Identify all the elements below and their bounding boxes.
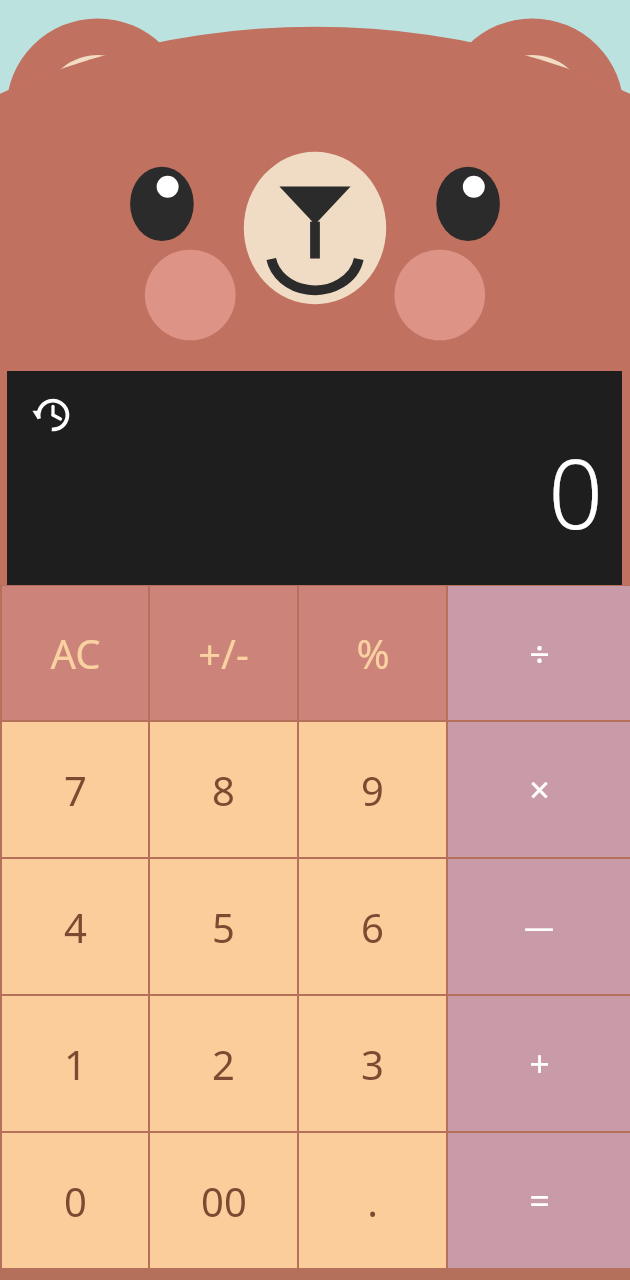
staticText: 9 — [361, 763, 384, 817]
button[interactable]: — — [448, 859, 630, 994]
staticText: 7 — [64, 763, 87, 817]
staticText: 6 — [361, 900, 384, 954]
button[interactable]: × — [448, 722, 630, 857]
staticText: 0 — [548, 426, 603, 557]
staticText: AC — [50, 626, 101, 680]
staticText: — — [524, 906, 554, 947]
button[interactable]: % — [299, 586, 446, 720]
button[interactable]: ÷ — [448, 586, 630, 720]
button[interactable]: + — [448, 996, 630, 1131]
staticText: 00 — [201, 1174, 247, 1228]
button[interactable]: 7 — [2, 722, 148, 857]
staticText: % — [356, 626, 390, 680]
staticText: . — [367, 1174, 378, 1228]
button[interactable]: 5 — [150, 859, 297, 994]
staticText: 0 — [64, 1174, 87, 1228]
staticText: 4 — [64, 900, 87, 954]
staticText: 3 — [361, 1037, 384, 1091]
staticText: + — [529, 1039, 550, 1088]
button[interactable]: 2 — [150, 996, 297, 1131]
staticText: ÷ — [529, 629, 550, 678]
button[interactable]: +/- — [150, 586, 297, 720]
button[interactable]: 6 — [299, 859, 446, 994]
staticText: = — [529, 1176, 550, 1225]
button[interactable]: History — [31, 393, 75, 437]
staticText: 5 — [212, 900, 235, 954]
staticText: 1 — [64, 1037, 87, 1091]
staticText: × — [529, 765, 550, 814]
button[interactable]: 3 — [299, 996, 446, 1131]
staticText: 8 — [212, 763, 235, 817]
button[interactable]: 8 — [150, 722, 297, 857]
button[interactable]: 1 — [2, 996, 148, 1131]
button[interactable]: 0 — [2, 1133, 148, 1268]
button[interactable]: 00 — [150, 1133, 297, 1268]
button[interactable]: . — [299, 1133, 446, 1268]
staticText: 2 — [212, 1037, 235, 1091]
staticText: +/- — [198, 626, 249, 680]
button[interactable]: AC — [2, 586, 148, 720]
button[interactable]: = — [448, 1133, 630, 1268]
button[interactable]: 4 — [2, 859, 148, 994]
button[interactable]: 9 — [299, 722, 446, 857]
